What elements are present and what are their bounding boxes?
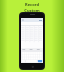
staticText: Record — [25, 2, 39, 7]
button[interactable] — [21, 48, 43, 63]
staticText: Custom — [24, 8, 40, 13]
button[interactable]: Back — [21, 18, 43, 22]
button[interactable]: Home — [31, 65, 34, 68]
button[interactable]: Back — [19, 12, 45, 70]
